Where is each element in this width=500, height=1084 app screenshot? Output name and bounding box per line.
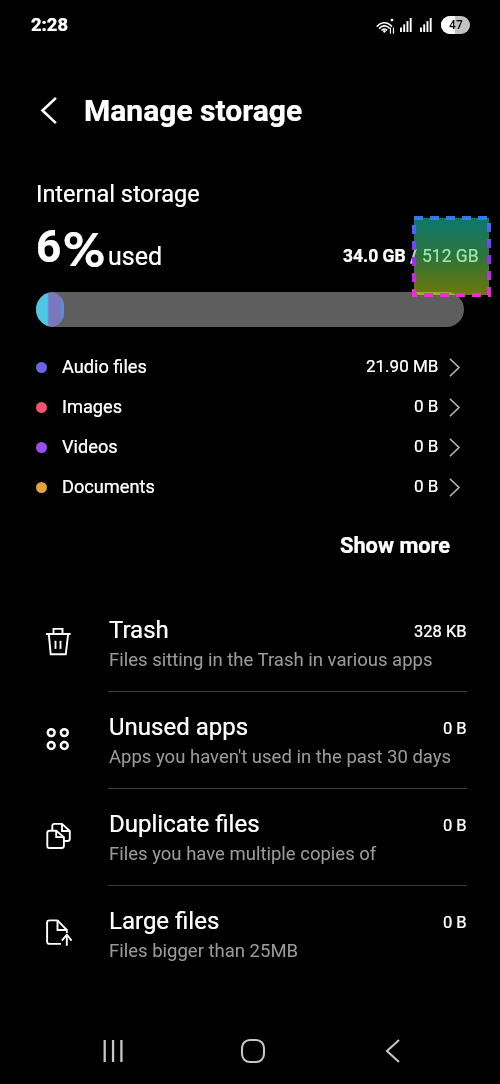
button[interactable]: Videos: [0, 427, 500, 467]
staticText: 2:28: [31, 14, 69, 36]
button[interactable]: Home: [217, 1016, 288, 1084]
staticText: Trash: [109, 616, 169, 644]
staticText: 6: [36, 221, 62, 273]
staticText: Files sitting in the Trash in various ap…: [109, 649, 433, 671]
staticText: Documents: [62, 476, 155, 497]
staticText: 328 KB: [414, 622, 467, 641]
staticText: Internal storage: [36, 180, 200, 208]
button[interactable]: Documents: [0, 467, 500, 507]
staticText: 47: [449, 18, 463, 32]
button[interactable]: Recent apps: [77, 1016, 148, 1084]
staticText: 0 B: [414, 476, 439, 496]
button[interactable]: Trash: [0, 598, 500, 695]
staticText: Files you have multiple copies of: [109, 843, 377, 865]
staticText: %: [62, 232, 107, 274]
staticText: used: [108, 242, 163, 271]
staticText: Show more: [340, 533, 451, 559]
staticText: Apps you haven't used in the past 30 day…: [109, 746, 452, 768]
staticText: Unused apps: [109, 713, 249, 741]
staticText: Files bigger than 25MB: [109, 940, 299, 962]
staticText: Large files: [109, 907, 220, 935]
staticText: 0 B: [443, 719, 467, 738]
staticText: Images: [62, 396, 123, 417]
staticText: /: [406, 246, 422, 267]
button[interactable]: Show more: [332, 526, 459, 566]
button[interactable]: Back: [27, 89, 69, 131]
button[interactable]: Audio files: [0, 347, 500, 387]
staticText: Audio files: [62, 356, 147, 377]
staticText: Duplicate files: [109, 810, 260, 838]
button[interactable]: Images: [0, 387, 500, 427]
button[interactable]: Unused apps: [0, 695, 500, 792]
staticText: 0 B: [443, 816, 467, 835]
staticText: Manage storage: [84, 93, 303, 128]
button[interactable]: Back: [357, 1016, 428, 1084]
staticText: 0 B: [443, 913, 467, 932]
staticText: 21.90 MB: [366, 356, 439, 376]
staticText: 512 GB: [422, 246, 479, 267]
button[interactable]: Large files: [0, 889, 500, 986]
staticText: 0 B: [414, 396, 439, 416]
staticText: 34.0 GB: [343, 246, 406, 267]
staticText: 0 B: [414, 436, 439, 456]
button[interactable]: Duplicate files: [0, 792, 500, 889]
staticText: Videos: [62, 436, 118, 457]
